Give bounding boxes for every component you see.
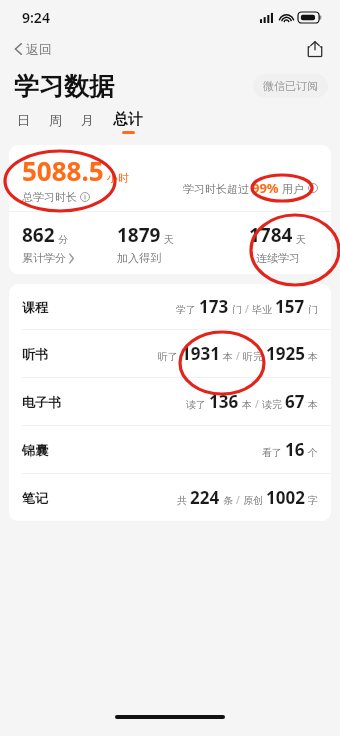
staticText: 总计 <box>113 110 143 129</box>
staticText: 课程 <box>22 299 48 315</box>
staticText: 总学习时长 <box>22 190 77 204</box>
button[interactable]: 总计 <box>110 110 146 134</box>
staticText: 1925 <box>266 342 305 365</box>
staticText: 学了 <box>176 303 196 316</box>
staticText: 学习时长超过 <box>183 181 252 196</box>
staticText: 5088.5 <box>22 153 104 188</box>
staticText: 累计学分 <box>22 251 66 265</box>
staticText: 原创 <box>243 494 263 507</box>
staticText: 电子书 <box>22 394 61 410</box>
button[interactable]: 锦囊 <box>9 426 331 473</box>
staticText: 学习数据 <box>14 71 114 102</box>
staticText: 共 <box>177 494 187 507</box>
staticText: 读了 <box>186 398 206 411</box>
staticText: 门 <box>308 303 318 316</box>
staticText: 听完 <box>243 350 263 363</box>
button[interactable]: 周 <box>46 112 65 133</box>
staticText: 本 <box>242 398 252 411</box>
staticText: 224 <box>190 486 220 509</box>
staticText: 字 <box>308 494 318 507</box>
staticText: 周 <box>49 112 62 128</box>
staticText: 1784 <box>249 222 293 248</box>
staticText: 听书 <box>22 346 48 362</box>
staticText: 136 <box>209 390 239 413</box>
staticText: / <box>236 349 240 363</box>
button[interactable]: 返回 <box>10 38 56 60</box>
staticText: 加入得到 <box>117 251 161 265</box>
staticText: 个 <box>308 446 318 459</box>
staticText: / <box>255 397 259 411</box>
staticText: 条 <box>223 494 233 507</box>
staticText: 连续学习 <box>256 251 300 265</box>
staticText: 本 <box>223 350 233 363</box>
staticText: 日 <box>17 112 30 128</box>
button[interactable]: 微信已订阅 <box>253 74 328 98</box>
staticText: 分 <box>58 233 68 246</box>
staticText: 本 <box>308 350 318 363</box>
button[interactable]: 月 <box>78 112 97 133</box>
staticText: 天 <box>296 233 306 246</box>
staticText: / <box>245 302 249 316</box>
staticText: 99% <box>252 179 279 197</box>
staticText: 月 <box>81 112 94 128</box>
staticText: 毕业 <box>252 303 272 316</box>
staticText: 16 <box>285 438 305 461</box>
staticText: 笔记 <box>22 490 48 506</box>
staticText: 微信已订阅 <box>263 79 318 93</box>
button[interactable]: 电子书 <box>9 378 331 425</box>
staticText: 锦囊 <box>22 442 48 458</box>
staticText: 862 <box>22 222 55 248</box>
staticText: 9:24 <box>22 8 50 27</box>
staticText: 门 <box>232 303 242 316</box>
staticText: / <box>236 493 240 507</box>
staticText: 1002 <box>266 486 305 509</box>
staticText: 1931 <box>181 342 220 365</box>
button[interactable]: 课程 <box>9 284 331 329</box>
staticText: 小时 <box>107 171 129 185</box>
staticText: 1879 <box>117 222 161 248</box>
staticText: 看了 <box>262 446 282 459</box>
button[interactable]: 日 <box>14 112 33 133</box>
staticText: 天 <box>164 233 174 246</box>
staticText: 67 <box>285 390 305 413</box>
button[interactable]: Share <box>302 36 328 62</box>
staticText: 听了 <box>158 350 178 363</box>
staticText: 返回 <box>26 41 52 57</box>
staticText: 读完 <box>262 398 282 411</box>
staticText: 本 <box>308 398 318 411</box>
button[interactable]: 862 <box>9 212 117 274</box>
button[interactable]: 听书 <box>9 330 331 377</box>
button[interactable]: 学习时长超过 <box>183 179 318 197</box>
staticText: 157 <box>275 295 305 318</box>
button[interactable]: 笔记 <box>9 474 331 521</box>
staticText: 173 <box>199 295 229 318</box>
staticText: 用户 <box>279 181 304 196</box>
